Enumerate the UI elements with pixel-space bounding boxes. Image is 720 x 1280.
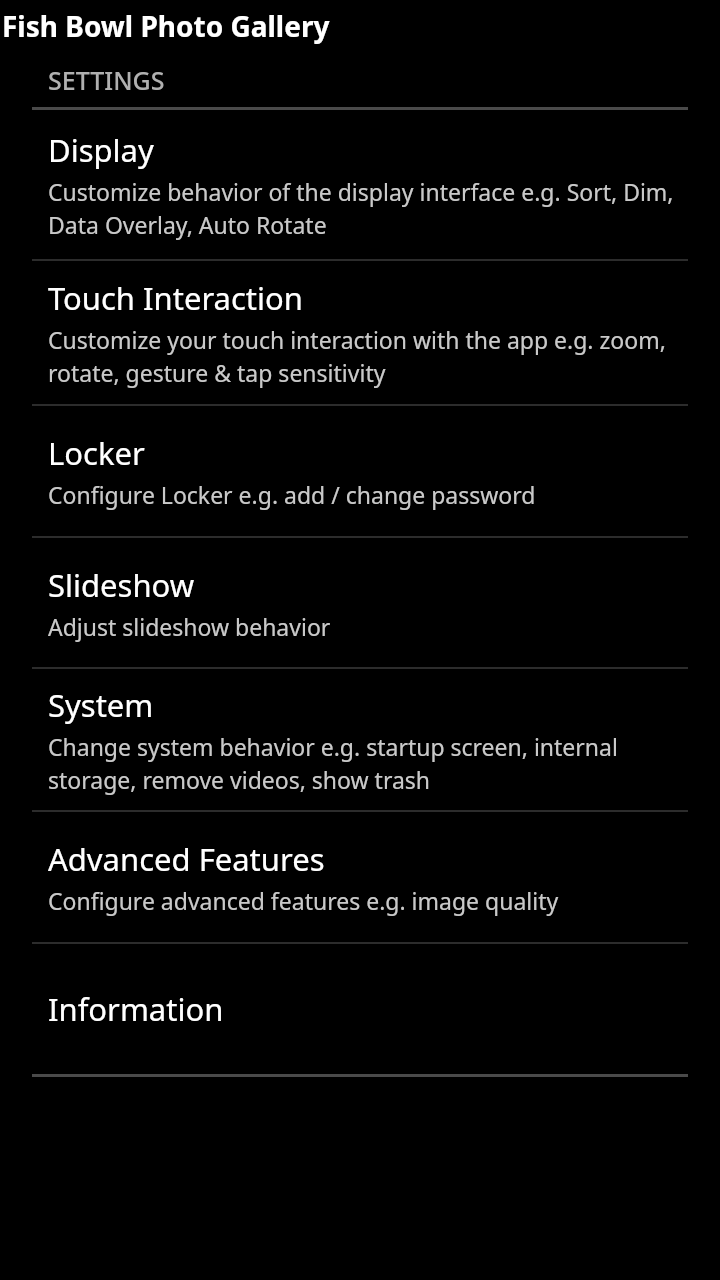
button[interactable]: System: [0, 669, 720, 810]
staticText: Advanced Features: [48, 838, 325, 880]
staticText: Touch Interaction: [48, 277, 303, 319]
staticText: Customize behavior of the display interf…: [48, 176, 692, 241]
staticText: System: [48, 684, 154, 726]
staticText: Change system behavior e.g. startup scre…: [48, 731, 692, 796]
button[interactable]: Slideshow: [0, 538, 720, 667]
button[interactable]: Advanced Features: [0, 812, 720, 942]
staticText: Information: [48, 988, 224, 1030]
staticText: Fish Bowl Photo Gallery: [2, 7, 330, 45]
staticText: Slideshow: [48, 564, 195, 606]
staticText: Configure advanced features e.g. image q…: [48, 885, 559, 916]
button[interactable]: Information: [0, 944, 720, 1074]
button[interactable]: Display: [0, 110, 720, 259]
staticText: Customize your touch interaction with th…: [48, 324, 692, 389]
staticText: Adjust slideshow behavior: [48, 611, 331, 642]
button[interactable]: Touch Interaction: [0, 261, 720, 404]
staticText: Display: [48, 129, 154, 171]
staticText: Configure Locker e.g. add / change passw…: [48, 479, 536, 510]
staticText: Locker: [48, 432, 145, 474]
staticText: SETTINGS: [48, 63, 165, 97]
button[interactable]: Locker: [0, 406, 720, 536]
